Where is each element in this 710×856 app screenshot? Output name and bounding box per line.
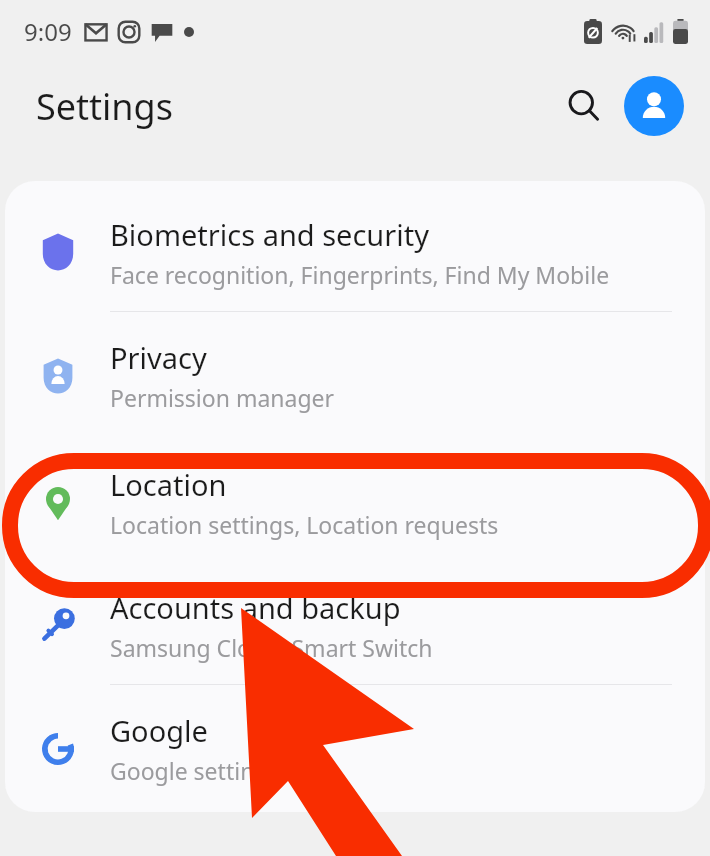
staticText: Biometrics and security: [110, 215, 430, 254]
staticText: Face recognition, Fingerprints, Find My …: [110, 259, 610, 290]
staticText: Permission manager: [110, 382, 335, 413]
staticText: Accounts and backup: [110, 588, 401, 627]
button[interactable]: Accounts and backup: [5, 566, 705, 684]
button[interactable]: Account: [624, 76, 684, 136]
staticText: Location: [110, 465, 227, 504]
staticText: Google: [110, 711, 208, 750]
button[interactable]: Location: [5, 439, 705, 566]
staticText: Settings: [36, 82, 173, 131]
staticText: Privacy: [110, 338, 207, 377]
button[interactable]: Search: [556, 78, 612, 134]
staticText: 9:09: [24, 15, 72, 48]
button[interactable]: Biometrics and security: [5, 193, 705, 311]
staticText: Location settings, Location requests: [110, 509, 499, 540]
button[interactable]: Privacy: [5, 312, 705, 439]
staticText: Samsung Cloud, Smart Switch: [110, 632, 433, 663]
staticText: Google settings: [110, 755, 280, 786]
button[interactable]: Google: [5, 685, 705, 812]
